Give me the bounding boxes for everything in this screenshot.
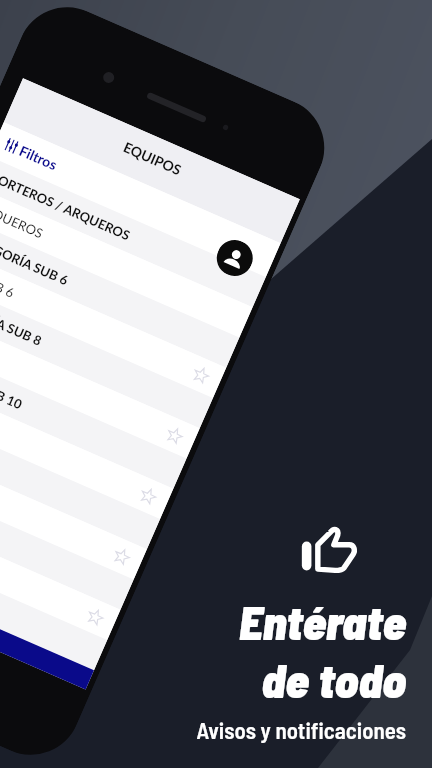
staticText: ARQUEROS [0, 199, 45, 241]
button[interactable]: CATEGORÍA SUB 12 [0, 398, 160, 549]
button[interactable]: SUB 8 A [0, 307, 200, 458]
button[interactable]: Filtros [2, 135, 60, 173]
button[interactable]: CATEGORÍA SUB 10 [0, 338, 186, 489]
staticText: de todo [261, 650, 406, 708]
staticText: EQUIPOS [121, 138, 185, 179]
button[interactable]: CATEGORÍA SUB 6 [0, 217, 239, 368]
button[interactable]: SUB 14 [0, 489, 120, 640]
staticText: LIGA SUB 6 [0, 259, 17, 301]
button[interactable]: Perfil [211, 234, 258, 282]
staticText: PORTEROS / ARQUEROS [0, 168, 133, 243]
staticText: Avisos y notificaciones [196, 716, 406, 744]
button[interactable]: Me gusta [298, 516, 362, 580]
button[interactable]: SUB 12 [0, 428, 147, 579]
button[interactable]: SUB 10 [0, 368, 173, 519]
button[interactable]: ARQUEROS [0, 186, 253, 337]
staticText: CATEGORÍA SUB 8 [0, 289, 44, 349]
button[interactable]: PORTEROS / ARQUEROS [0, 156, 266, 307]
staticText: Entérate [239, 592, 406, 650]
staticText: CATEGORÍA SUB 10 [0, 350, 25, 413]
button[interactable]: CATEGORÍA SUB 8 [0, 277, 213, 428]
staticText: Filtros [17, 142, 60, 173]
staticText: CATEGORÍA SUB 6 [0, 229, 71, 288]
button[interactable]: LIGA SUB 6 [0, 247, 226, 398]
button[interactable]: CATEGORÍA SUB 14 [0, 459, 134, 610]
button[interactable]: CATEGORÍA SUB 16 [0, 519, 107, 670]
